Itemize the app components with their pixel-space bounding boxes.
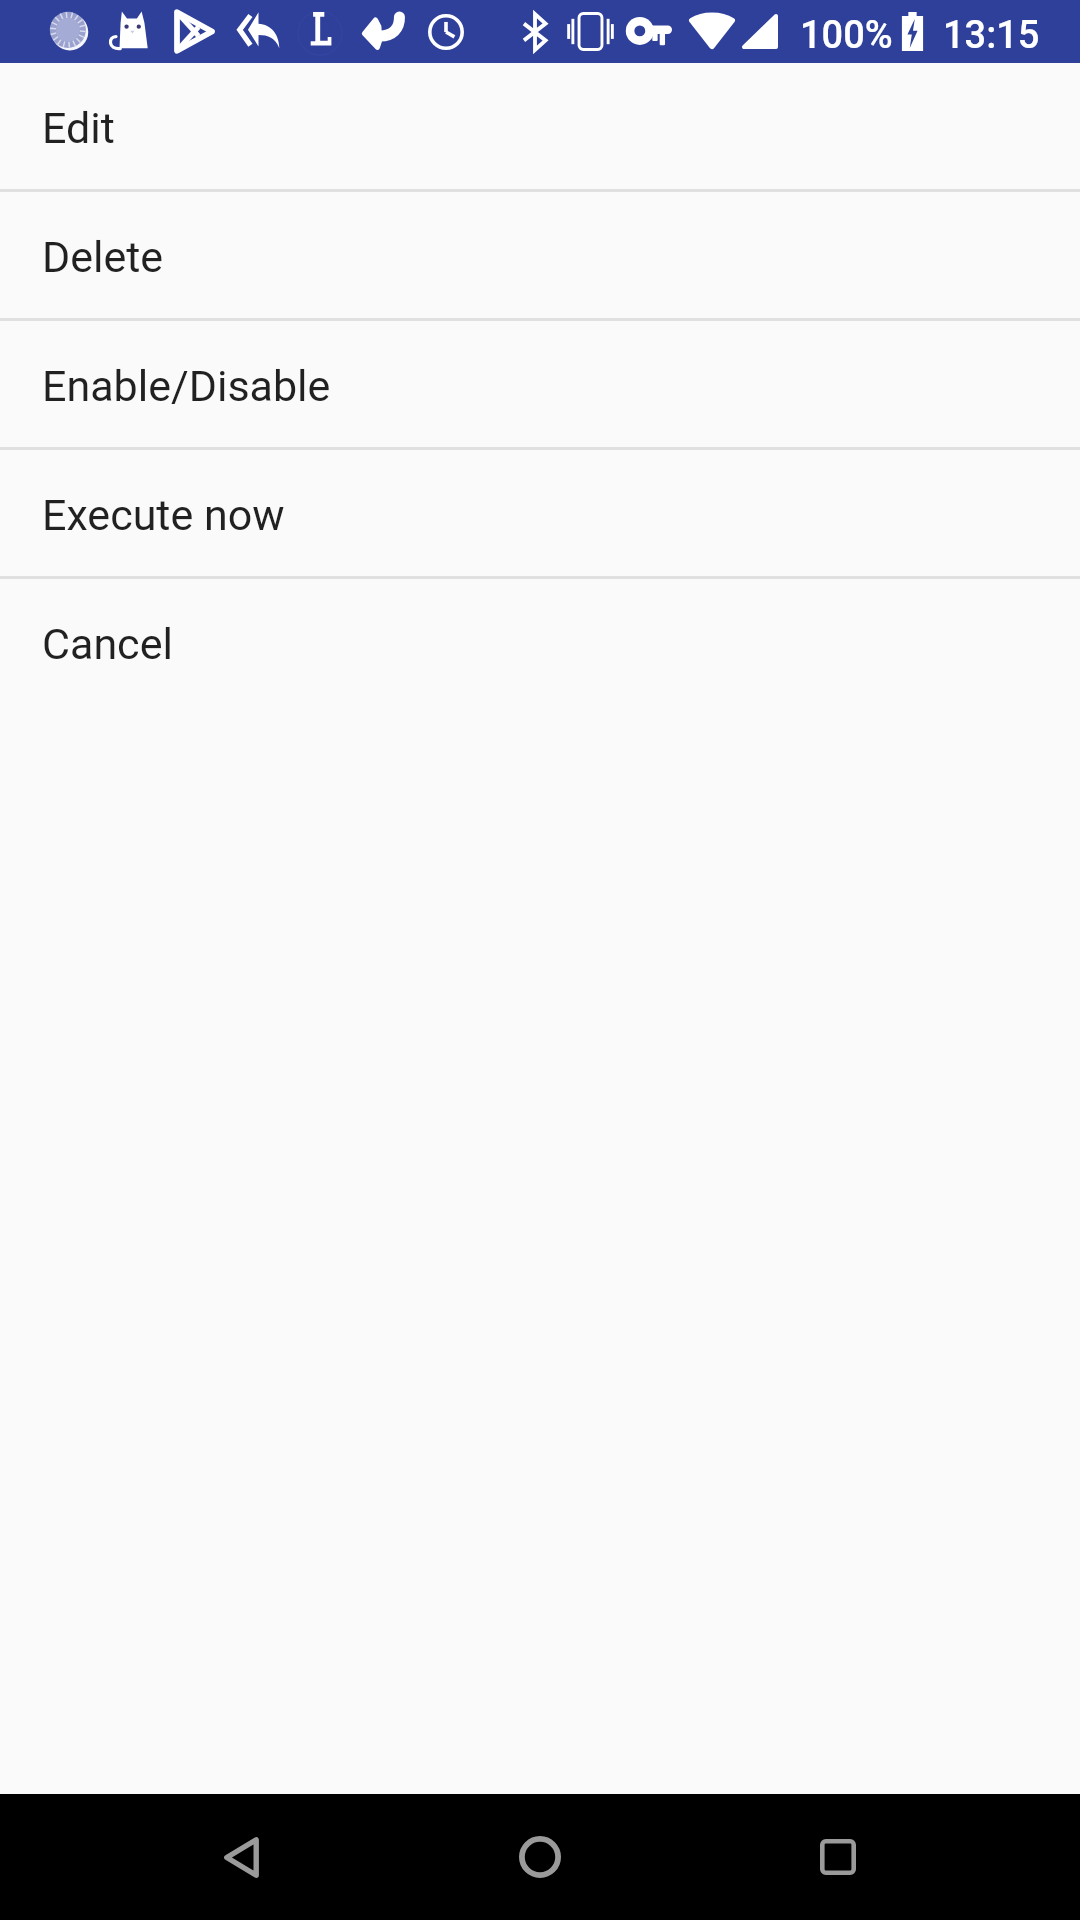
staticText: 13:15 xyxy=(943,13,1040,58)
staticText: Execute now xyxy=(42,490,285,540)
button[interactable]: Cancel xyxy=(0,579,1080,705)
staticText: Enable/Disable xyxy=(42,361,331,411)
button[interactable]: Edit xyxy=(0,63,1080,189)
staticText: Edit xyxy=(42,103,115,153)
button[interactable]: Recents xyxy=(778,1797,898,1917)
button[interactable]: Home xyxy=(480,1797,600,1917)
button[interactable]: Back xyxy=(184,1800,298,1914)
button[interactable]: Delete xyxy=(0,192,1080,318)
staticText: Cancel xyxy=(42,619,173,669)
button[interactable]: Enable/Disable xyxy=(0,321,1080,447)
staticText: 100% xyxy=(800,13,893,58)
staticText: Delete xyxy=(42,232,164,282)
button[interactable]: Execute now xyxy=(0,450,1080,576)
